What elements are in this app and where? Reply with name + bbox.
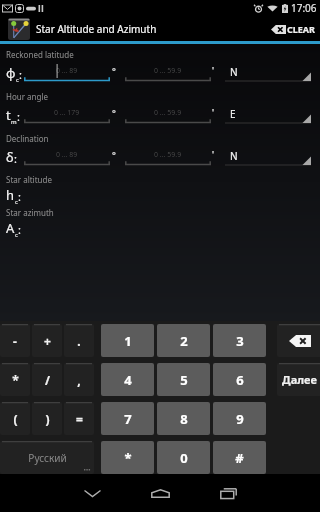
staticText: 7 bbox=[124, 410, 132, 428]
staticText: = bbox=[76, 411, 83, 427]
staticText: - bbox=[13, 333, 17, 349]
button[interactable]: . bbox=[64, 324, 94, 357]
button[interactable]: / bbox=[32, 363, 62, 396]
staticText: 8 bbox=[180, 410, 188, 428]
staticText: + bbox=[44, 333, 51, 349]
staticText: ' bbox=[212, 106, 215, 118]
staticText: Star Altitude and Azimuth bbox=[36, 22, 157, 36]
staticText: : bbox=[18, 222, 21, 237]
staticText: ' bbox=[212, 64, 215, 76]
staticText: m bbox=[11, 118, 17, 126]
button[interactable]: # bbox=[213, 441, 266, 474]
staticText: E bbox=[230, 107, 236, 121]
staticText: ' bbox=[212, 148, 215, 160]
button[interactable]: - bbox=[0, 324, 30, 357]
button[interactable]: E bbox=[225, 105, 311, 125]
button[interactable]: 6 bbox=[213, 363, 266, 396]
button[interactable]: 0 ... 59.9 bbox=[125, 147, 211, 167]
staticText: * bbox=[124, 449, 132, 467]
staticText: # bbox=[235, 449, 244, 467]
staticText: t bbox=[6, 106, 11, 124]
button[interactable]: Далее bbox=[277, 363, 320, 396]
staticText: CLEAR bbox=[287, 23, 315, 35]
button[interactable]: Backspace bbox=[277, 324, 320, 357]
button[interactable]: = bbox=[64, 402, 94, 435]
staticText: Reckoned latitude bbox=[6, 49, 74, 60]
staticText: 0 ... 59.9 bbox=[154, 66, 182, 76]
staticText: 0 ... 89 bbox=[56, 150, 78, 160]
button[interactable]: Home bbox=[126, 474, 194, 512]
staticText: ° bbox=[112, 107, 116, 119]
button[interactable]: 4 bbox=[101, 363, 154, 396]
staticText: 1 bbox=[124, 332, 132, 350]
staticText: : bbox=[19, 67, 22, 82]
button[interactable]: Recents bbox=[194, 474, 262, 512]
staticText: ) bbox=[45, 411, 50, 427]
staticText: 2 bbox=[180, 332, 188, 350]
staticText: ( bbox=[13, 411, 18, 427]
staticText: 0 ... 59.9 bbox=[154, 150, 182, 160]
button[interactable]: 0 ... 59.9 bbox=[125, 63, 211, 83]
button[interactable]: * bbox=[0, 363, 30, 396]
button[interactable]: + bbox=[32, 324, 62, 357]
staticText: : bbox=[14, 151, 17, 166]
staticText: 0 ... 59.9 bbox=[154, 108, 182, 118]
staticText: : bbox=[17, 109, 20, 124]
button[interactable]: , bbox=[64, 363, 94, 396]
staticText: h bbox=[6, 186, 15, 204]
button[interactable]: ( bbox=[0, 402, 30, 435]
staticText: : bbox=[18, 189, 21, 204]
staticText: . bbox=[77, 333, 81, 349]
button[interactable]: 0 ... 179 bbox=[24, 105, 110, 125]
staticText: Star azimuth bbox=[6, 207, 54, 218]
staticText: ° bbox=[112, 65, 116, 77]
staticText: c bbox=[15, 198, 18, 206]
staticText: Star altitude bbox=[6, 174, 52, 185]
staticText: 5 bbox=[180, 371, 188, 389]
staticText: 0 ... 179 bbox=[54, 108, 80, 118]
button[interactable]: N bbox=[225, 147, 311, 167]
staticText: A bbox=[6, 219, 15, 237]
staticText: , bbox=[77, 372, 81, 388]
button[interactable]: 3 bbox=[213, 324, 266, 357]
button[interactable]: 0 ... 89 bbox=[24, 147, 110, 167]
button[interactable]: 0 ... 89 bbox=[24, 63, 110, 83]
staticText: c bbox=[15, 231, 18, 239]
button[interactable]: 7 bbox=[101, 402, 154, 435]
staticText: Hour angle bbox=[6, 91, 49, 102]
staticText: 0 bbox=[180, 449, 188, 467]
button[interactable]: Hide keyboard bbox=[58, 474, 126, 512]
staticText: / bbox=[45, 372, 50, 388]
button[interactable]: 8 bbox=[157, 402, 210, 435]
button[interactable]: N bbox=[225, 63, 311, 83]
staticText: c bbox=[16, 76, 19, 84]
button[interactable]: 0 ... 59.9 bbox=[125, 105, 211, 125]
staticText: 6 bbox=[236, 371, 244, 389]
button[interactable]: * bbox=[101, 441, 154, 474]
button[interactable]: 0 bbox=[157, 441, 210, 474]
button[interactable]: ) bbox=[32, 402, 62, 435]
staticText: 9 bbox=[236, 410, 244, 428]
staticText: 0 ... 89 bbox=[56, 66, 78, 76]
button[interactable]: Русский bbox=[0, 441, 94, 474]
button[interactable]: CLEAR bbox=[269, 19, 317, 39]
staticText: Далее bbox=[282, 372, 317, 387]
staticText: * bbox=[12, 372, 19, 388]
staticText: Русский bbox=[28, 451, 67, 465]
button[interactable]: 9 bbox=[213, 402, 266, 435]
staticText: N bbox=[230, 65, 238, 79]
staticText: N bbox=[230, 149, 238, 163]
staticText: ° bbox=[112, 149, 116, 161]
button[interactable]: 2 bbox=[157, 324, 210, 357]
staticText: 17:06 bbox=[291, 1, 317, 15]
staticText: δ bbox=[6, 148, 14, 166]
button[interactable]: 1 bbox=[101, 324, 154, 357]
button[interactable]: 5 bbox=[157, 363, 210, 396]
staticText: 4 bbox=[124, 371, 132, 389]
staticText: 3 bbox=[236, 332, 244, 350]
staticText: φ bbox=[6, 64, 16, 82]
staticText: Declination bbox=[6, 133, 49, 144]
